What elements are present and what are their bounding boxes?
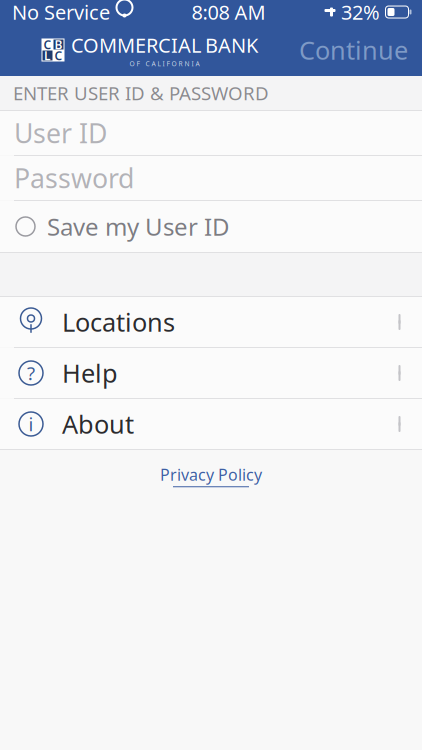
staticText: L xyxy=(44,47,51,63)
staticText: B xyxy=(54,36,62,52)
button[interactable]: Password xyxy=(0,156,422,200)
staticText: Continue xyxy=(299,33,408,67)
staticText: O F C A L I F O R N I A xyxy=(129,59,199,68)
staticText: Locations xyxy=(62,305,175,339)
button[interactable]: Continue xyxy=(299,25,422,75)
staticText: BANK xyxy=(205,32,258,58)
staticText: ? xyxy=(27,361,35,385)
staticText: User ID xyxy=(14,115,107,151)
staticText: Privacy Policy xyxy=(160,464,262,485)
staticText: Help xyxy=(62,356,118,390)
button[interactable]: Save my User ID xyxy=(0,201,422,252)
staticText: Password xyxy=(14,160,134,196)
staticText: ENTER USER ID & PASSWORD xyxy=(13,81,269,105)
button[interactable]: Locations xyxy=(0,297,422,347)
button[interactable]: Privacy Policy xyxy=(140,450,282,497)
staticText: Save my User ID xyxy=(47,211,230,242)
staticText: C xyxy=(43,36,51,52)
staticText: 8:08 AM xyxy=(191,0,265,25)
staticText: C xyxy=(54,47,62,63)
button[interactable]: ? xyxy=(0,348,422,398)
staticText: COMMERCIAL xyxy=(71,32,201,58)
button[interactable]: User ID xyxy=(0,111,422,155)
staticText: No Service xyxy=(12,0,110,25)
button[interactable]: i xyxy=(0,399,422,449)
staticText: i xyxy=(28,412,33,436)
staticText: 32% xyxy=(341,0,380,25)
staticText: About xyxy=(62,407,134,441)
